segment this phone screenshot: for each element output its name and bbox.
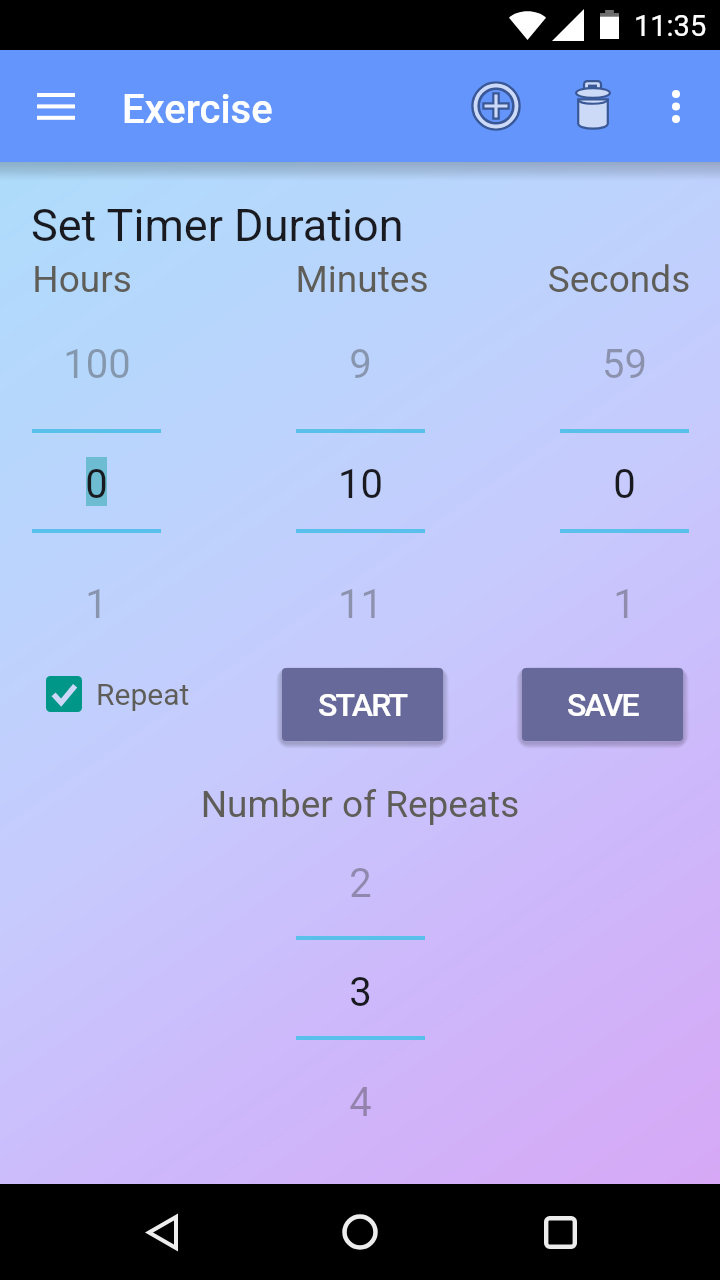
staticText: Set Timer Duration xyxy=(31,199,404,252)
staticText: 2 xyxy=(349,860,372,907)
button[interactable]: 59 xyxy=(560,335,689,393)
button[interactable]: Open navigation drawer xyxy=(20,70,92,142)
button[interactable]: Back xyxy=(120,1184,200,1280)
staticText: 0 xyxy=(85,461,108,508)
staticText: 3 xyxy=(349,969,372,1016)
staticText: Number of Repeats xyxy=(180,783,540,826)
button[interactable]: 3 xyxy=(296,963,425,1021)
staticText: 9 xyxy=(349,341,372,388)
staticText: Repeat xyxy=(96,677,190,712)
staticText: 11 xyxy=(338,581,383,628)
button[interactable]: 0 xyxy=(32,455,161,513)
button[interactable]: 11 xyxy=(296,575,425,633)
staticText: 0 xyxy=(613,461,636,508)
button[interactable]: Delete xyxy=(557,68,629,140)
button[interactable]: Recent apps xyxy=(520,1184,600,1280)
button[interactable]: 0 xyxy=(560,455,689,513)
staticText: START xyxy=(318,686,407,724)
staticText: Exercise xyxy=(122,86,273,133)
button[interactable]: Repeat xyxy=(40,670,190,718)
button[interactable]: 100 xyxy=(32,335,161,393)
button[interactable]: 9 xyxy=(296,335,425,393)
button[interactable]: 1 xyxy=(32,575,161,633)
button[interactable]: Home xyxy=(320,1184,400,1280)
staticText: 100 xyxy=(63,341,131,388)
button[interactable]: 1 xyxy=(560,575,689,633)
button[interactable]: 4 xyxy=(296,1073,425,1131)
staticText: 1 xyxy=(85,581,108,628)
staticText: SAVE xyxy=(567,686,638,724)
button[interactable]: SAVE xyxy=(522,668,683,741)
staticText: Seconds xyxy=(439,258,720,301)
staticText: 1 xyxy=(613,581,636,628)
button[interactable]: START xyxy=(282,668,443,741)
staticText: 10 xyxy=(338,461,383,508)
staticText: 11:35 xyxy=(634,9,707,43)
button[interactable]: More options xyxy=(640,70,712,142)
staticText: Minutes xyxy=(182,258,542,301)
staticText: 4 xyxy=(349,1079,372,1126)
button[interactable]: Add exercise xyxy=(460,70,532,142)
staticText: Hours xyxy=(0,258,262,301)
button[interactable]: 2 xyxy=(296,854,425,912)
staticText: 59 xyxy=(602,341,647,388)
button[interactable]: 10 xyxy=(296,455,425,513)
